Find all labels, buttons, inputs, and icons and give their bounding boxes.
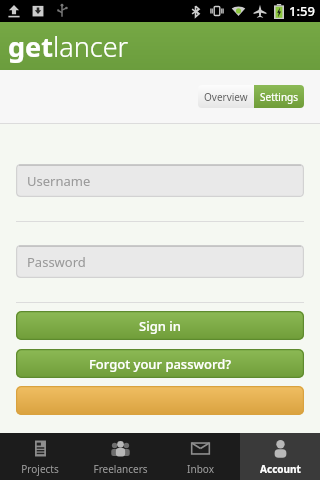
button[interactable]: Username xyxy=(16,164,304,197)
staticText: Overview xyxy=(204,90,248,104)
button[interactable]: Sign in xyxy=(16,311,304,340)
button[interactable]: Account xyxy=(240,433,320,480)
staticText: Inbox xyxy=(187,462,214,476)
button[interactable]: Freelancers xyxy=(80,433,160,480)
staticText: Forgot your password? xyxy=(89,355,232,373)
staticText: Password xyxy=(27,253,86,271)
staticText: Account xyxy=(260,462,301,476)
staticText: lancer xyxy=(53,28,129,65)
staticText: 1:59 xyxy=(289,2,315,20)
staticText: Username xyxy=(27,172,91,190)
staticText: Freelancers xyxy=(93,462,148,476)
staticText: Projects xyxy=(21,462,59,476)
button[interactable]: Overview xyxy=(198,85,254,108)
button[interactable]: Projects xyxy=(0,433,80,480)
staticText: Sign in xyxy=(139,317,181,335)
button[interactable]: Forgot your password? xyxy=(16,349,304,378)
button[interactable] xyxy=(16,386,304,415)
staticText: get xyxy=(8,28,53,65)
button[interactable]: Settings xyxy=(254,85,304,108)
button[interactable]: Inbox xyxy=(160,433,240,480)
button[interactable]: Password xyxy=(16,245,304,278)
staticText: Settings xyxy=(260,90,299,104)
